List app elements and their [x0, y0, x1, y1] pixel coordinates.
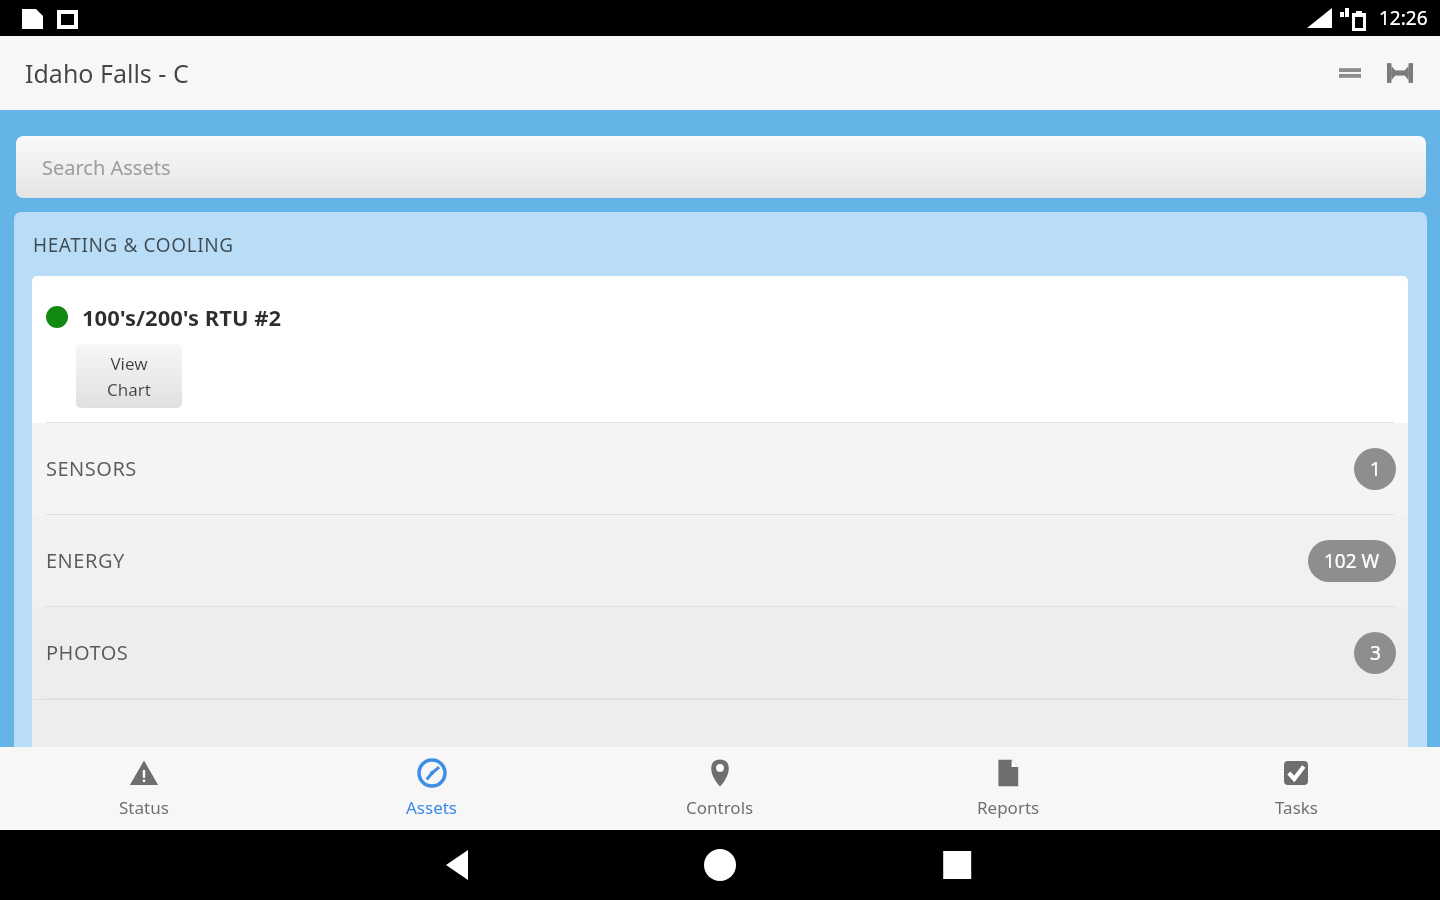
- button[interactable]: Status: [0, 747, 288, 830]
- staticText: 12:26: [1379, 5, 1428, 31]
- button[interactable]: View Chart: [76, 344, 182, 408]
- staticText: 102 W: [1324, 548, 1380, 574]
- button[interactable]: 100's/200's RTU #2: [32, 276, 1408, 423]
- staticText: ENERGY: [46, 547, 125, 574]
- staticText: Search Assets: [42, 154, 171, 181]
- staticText: 100's/200's RTU #2: [82, 302, 282, 332]
- staticText: Idaho Falls - C: [25, 56, 189, 90]
- staticText: SENSORS: [46, 455, 137, 482]
- staticText: PHOTOS: [46, 639, 129, 666]
- staticText: View Chart: [107, 352, 151, 401]
- staticText: 3: [1370, 640, 1381, 666]
- staticText: Tasks: [1275, 796, 1318, 819]
- button[interactable]: Reports: [864, 747, 1152, 830]
- staticText: HEATING & COOLING: [33, 232, 234, 258]
- button[interactable]: Search Assets: [16, 136, 1426, 198]
- staticText: Status: [119, 796, 169, 819]
- button[interactable]: Assets: [288, 747, 576, 830]
- button[interactable]: ENERGY: [32, 515, 1408, 607]
- button[interactable]: SENSORS: [32, 423, 1408, 515]
- staticText: Assets: [406, 796, 458, 819]
- staticText: 1: [1370, 456, 1381, 482]
- staticText: Reports: [977, 796, 1040, 819]
- staticText: Controls: [686, 796, 754, 819]
- button[interactable]: PHOTOS: [32, 607, 1408, 699]
- button[interactable]: Controls: [576, 747, 864, 830]
- button[interactable]: Fit width: [1378, 51, 1422, 95]
- button[interactable]: Tasks: [1152, 747, 1440, 830]
- button[interactable]: List view: [1328, 51, 1372, 95]
